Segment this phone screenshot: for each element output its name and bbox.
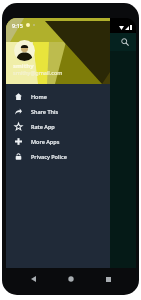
staticText: Home [31,93,47,100]
staticText: Share This [31,108,59,115]
button[interactable]: Search [121,38,129,46]
button[interactable]: Recent apps [101,272,115,286]
staticText: Rate App [31,123,55,130]
button[interactable]: Back [26,272,40,286]
staticText: Privacy Police [31,153,67,160]
button[interactable]: More Apps [6,134,110,149]
button[interactable]: Share This [6,104,110,119]
staticText: More Apps [31,138,60,145]
button[interactable]: Home [64,272,78,286]
staticText: smithy [13,62,34,70]
button[interactable]: Privacy Police [6,149,110,164]
button[interactable]: Rate App [6,119,110,134]
staticText: 9:15 [12,22,23,29]
staticText: smithy@gmail.com [13,69,63,76]
button[interactable]: Home [6,89,110,104]
